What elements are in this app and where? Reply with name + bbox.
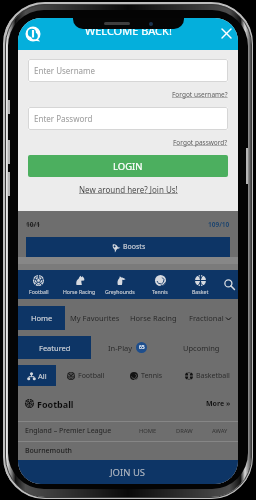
staticText: 109/10 bbox=[208, 220, 230, 229]
button[interactable]: Featured bbox=[18, 336, 91, 359]
button[interactable]: Basketball bbox=[177, 365, 238, 386]
button[interactable]: Horse Racing bbox=[125, 306, 182, 330]
button[interactable]: Football bbox=[18, 270, 59, 299]
button[interactable]: LOGIN bbox=[28, 155, 228, 177]
staticText: Tennis bbox=[141, 371, 163, 381]
staticText: JOIN US bbox=[110, 466, 146, 479]
button[interactable]: Search bbox=[220, 270, 238, 299]
staticText: LOGIN bbox=[113, 160, 143, 173]
staticText: Boosts bbox=[123, 242, 146, 252]
staticText: Greyhounds bbox=[105, 288, 135, 295]
staticText: 65 bbox=[139, 344, 145, 351]
button[interactable]: Enter Password bbox=[28, 107, 228, 130]
button[interactable]: Greyhounds bbox=[100, 270, 140, 299]
button[interactable]: Football bbox=[56, 365, 116, 386]
button[interactable]: Home bbox=[18, 306, 65, 330]
staticText: Horse Racing bbox=[63, 288, 96, 295]
staticText: More » bbox=[206, 399, 231, 409]
staticText: Upcoming bbox=[183, 343, 220, 353]
staticText: England – Premier League bbox=[25, 426, 112, 436]
button[interactable]: Basket bbox=[180, 270, 220, 299]
button[interactable]: Upcoming bbox=[164, 336, 238, 359]
button[interactable]: Close bbox=[218, 25, 235, 42]
staticText: Football bbox=[37, 398, 74, 410]
staticText: Tennis bbox=[152, 288, 168, 295]
staticText: Enter Password bbox=[34, 113, 93, 124]
staticText: Featured bbox=[39, 343, 71, 353]
staticText: WELCOME BACK! bbox=[85, 23, 172, 38]
button[interactable]: Tennis bbox=[140, 270, 180, 299]
staticText: HOME bbox=[139, 427, 157, 435]
button[interactable]: Enter Username bbox=[28, 59, 228, 82]
staticText: DRAW bbox=[176, 427, 193, 435]
button[interactable]: In-Play bbox=[91, 336, 164, 359]
button[interactable]: Boosts bbox=[26, 237, 230, 257]
button[interactable]: New around here? Join Us! bbox=[79, 184, 178, 195]
button[interactable]: Bournemouth bbox=[25, 441, 238, 460]
button[interactable]: Horse Racing bbox=[59, 270, 100, 299]
staticText: Basketball bbox=[196, 371, 230, 381]
staticText: My Favourites bbox=[70, 313, 120, 323]
button[interactable]: Football bbox=[25, 386, 231, 421]
staticText: Fractional bbox=[189, 313, 224, 323]
staticText: Home bbox=[31, 313, 53, 323]
staticText: Enter Username bbox=[34, 65, 96, 76]
button[interactable]: Tennis bbox=[116, 365, 177, 386]
button[interactable]: Fractional bbox=[182, 306, 238, 330]
staticText: Football bbox=[78, 371, 105, 381]
staticText: AWAY bbox=[212, 427, 228, 435]
staticText: In-Play bbox=[108, 343, 133, 353]
button[interactable]: Forgot password? bbox=[173, 138, 228, 147]
button[interactable]: My Favourites bbox=[65, 306, 125, 330]
staticText: Football bbox=[29, 288, 49, 295]
button[interactable]: App logo bbox=[25, 26, 41, 42]
staticText: 10/1 bbox=[26, 220, 40, 229]
button[interactable]: Forgot username? bbox=[172, 90, 228, 99]
staticText: Horse Racing bbox=[130, 313, 177, 323]
button[interactable]: England – Premier League bbox=[25, 421, 238, 441]
staticText: All bbox=[38, 371, 47, 381]
staticText: Bournemouth bbox=[25, 446, 72, 456]
button[interactable]: JOIN US bbox=[18, 460, 238, 484]
button[interactable]: All bbox=[18, 365, 56, 386]
staticText: Basket bbox=[192, 288, 209, 295]
